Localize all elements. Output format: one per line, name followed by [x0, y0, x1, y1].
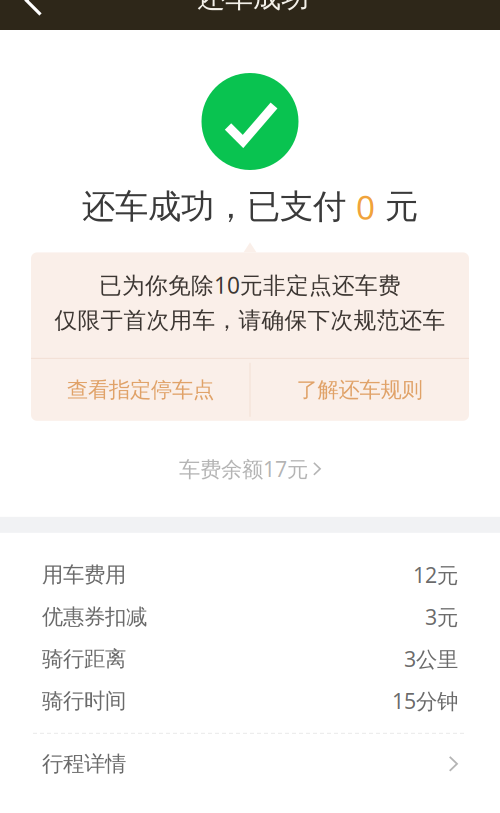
- staticText: 仅限于首次用车，请确保下次规范还车: [54, 306, 445, 335]
- staticText: 了解还车规则: [296, 376, 422, 403]
- staticText: 车费余额17元: [179, 454, 308, 483]
- button[interactable]: 行程详情: [0, 734, 500, 788]
- staticText: 3公里: [404, 644, 458, 673]
- staticText: 3元: [425, 602, 458, 631]
- button[interactable]: 查看指定停车点: [31, 359, 250, 421]
- staticText: 元: [375, 186, 418, 228]
- staticText: 15分钟: [392, 686, 458, 715]
- staticText: 已为你免除10元非定点还车费: [99, 269, 401, 300]
- staticText: 骑行距离: [42, 645, 126, 672]
- staticText: 用车费用: [42, 561, 126, 588]
- button[interactable]: 车费余额17元: [179, 452, 321, 486]
- staticText: 骑行时间: [42, 687, 126, 714]
- staticText: 优惠券扣减: [42, 603, 147, 630]
- staticText: 行程详情: [42, 750, 126, 777]
- staticText: 还车成功: [197, 0, 309, 15]
- staticText: 还车成功，已支付: [82, 186, 356, 228]
- staticText: 12元: [413, 560, 458, 589]
- staticText: 0: [356, 184, 375, 229]
- button[interactable]: 了解还车规则: [250, 359, 469, 421]
- staticText: 查看指定停车点: [67, 376, 214, 403]
